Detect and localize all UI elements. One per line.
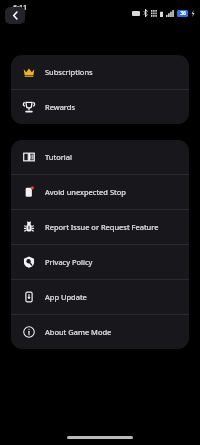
button[interactable]: Tutorial xyxy=(11,140,189,174)
staticText: Privacy Policy xyxy=(45,257,93,267)
button[interactable]: App Update xyxy=(11,280,189,314)
button[interactable]: Avoid unexpected Stop xyxy=(11,175,189,209)
button[interactable]: Rewards xyxy=(11,90,189,124)
button[interactable]: Back xyxy=(5,7,25,24)
staticText: 6:11 xyxy=(13,3,27,13)
staticText: Report Issue or Request Feature xyxy=(45,222,159,232)
staticText: Tutorial xyxy=(45,152,72,162)
staticText: Avoid unexpected Stop xyxy=(45,187,126,197)
button[interactable]: About Game Mode xyxy=(11,315,189,349)
staticText: 36 xyxy=(180,10,186,17)
staticText: Rewards xyxy=(45,102,75,112)
button[interactable]: Privacy Policy xyxy=(11,245,189,279)
staticText: App Update xyxy=(45,292,87,302)
button[interactable]: Report Issue or Request Feature xyxy=(11,210,189,244)
staticText: About Game Mode xyxy=(45,327,112,337)
button[interactable]: Subscriptions xyxy=(11,55,189,89)
staticText: Subscriptions xyxy=(45,67,93,77)
